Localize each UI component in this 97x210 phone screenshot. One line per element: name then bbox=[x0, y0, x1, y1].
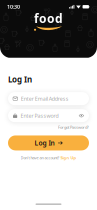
staticText: Enter Email Address bbox=[21, 95, 69, 102]
button[interactable]: Log In bbox=[8, 135, 89, 150]
staticText: Log In bbox=[8, 74, 32, 85]
staticText: 10:30 bbox=[7, 3, 20, 10]
button[interactable]: Forgot Password? bbox=[8, 125, 89, 130]
staticText: Log In bbox=[34, 138, 54, 147]
staticText: Sign Up bbox=[59, 155, 76, 160]
staticText: Don't have an account? bbox=[20, 155, 59, 160]
button[interactable]: Sign Up bbox=[59, 155, 76, 160]
staticText: Forgot Password? bbox=[58, 125, 89, 130]
staticText: food bbox=[34, 10, 63, 26]
staticText: Enter Password bbox=[20, 112, 58, 119]
